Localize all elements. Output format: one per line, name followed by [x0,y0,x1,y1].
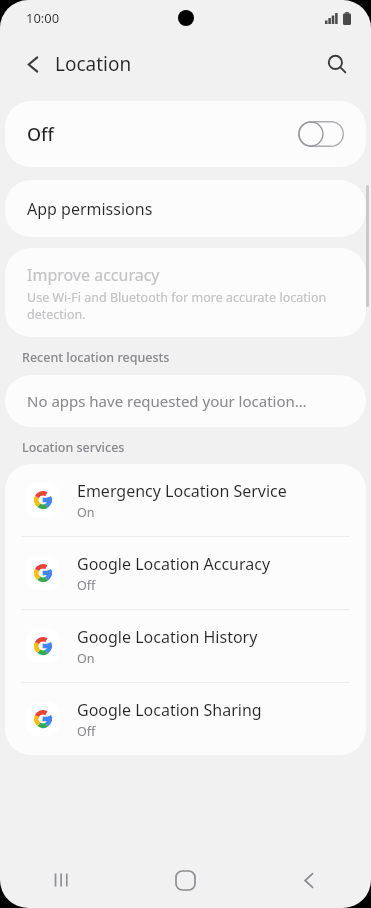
staticText: App permissions [27,198,153,220]
staticText: Google Location Sharing [77,699,262,721]
staticText: Off [77,723,96,740]
button[interactable]: Location toggle, off [298,121,344,147]
staticText: On [77,504,95,521]
button[interactable]: Google Location Accuracy [5,537,366,609]
button[interactable]: Emergency Location Service [5,464,366,536]
staticText: Recent location requests [22,349,170,366]
staticText: No apps have requested your location… [27,391,307,411]
staticText: Location services [22,439,125,456]
button[interactable]: Google Location History [5,610,366,682]
button[interactable]: App permissions [5,180,366,237]
staticText: Improve accuracy [27,264,160,286]
button[interactable]: Improve accuracy [5,248,366,337]
staticText: On [77,650,95,667]
button[interactable]: Back [12,43,54,85]
button[interactable]: Google Location Sharing [5,683,366,755]
staticText: Location [55,51,132,77]
button[interactable]: Search [315,42,359,86]
button[interactable]: Home [123,852,247,908]
staticText: Use Wi-Fi and Bluetooth for more accurat… [27,289,344,322]
button[interactable]: Off [5,101,366,167]
staticText: Off [77,577,96,594]
button[interactable]: Recent apps [0,852,123,908]
staticText: Emergency Location Service [77,480,287,502]
staticText: Google Location Accuracy [77,553,271,575]
staticText: Google Location History [77,626,258,648]
staticText: Off [27,122,54,147]
button[interactable]: Back [247,852,371,908]
staticText: 10:00 [26,9,60,27]
